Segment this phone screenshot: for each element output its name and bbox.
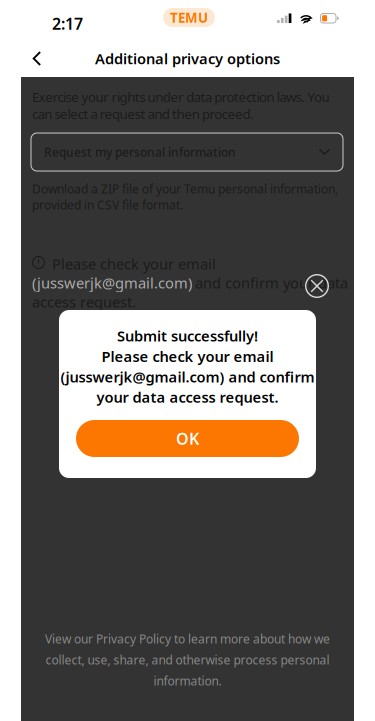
staticText: Additional privacy options [95, 49, 280, 68]
staticText: 2:17 [52, 13, 83, 34]
staticText: View our Privacy Policy to learn more ab… [45, 631, 330, 647]
staticText: Exercise your rights under data protecti… [32, 88, 330, 106]
staticText: OK [176, 428, 199, 449]
button[interactable]: Back [15, 40, 59, 77]
staticText: Download a ZIP file of your Temu persona… [32, 181, 338, 197]
staticText: and confirm your data [195, 273, 348, 292]
staticText: information. [153, 673, 221, 689]
staticText: Please check your email [101, 346, 273, 366]
button[interactable]: Close [297, 266, 337, 306]
staticText: provided in CSV file format. [32, 197, 183, 213]
staticText: Submit successfully! [117, 326, 258, 345]
staticText: TEMU [170, 9, 208, 26]
button[interactable]: OK [76, 420, 299, 457]
staticText: (jusswerjk@gmail.com) [32, 273, 192, 292]
staticText: Please check your email [52, 254, 216, 273]
staticText: (jusswerjk@gmail.com) and confirm [60, 367, 314, 386]
staticText: your data access request. [96, 387, 278, 407]
staticText: can select a request and then proceed. [32, 105, 254, 123]
staticText: collect, use, share, and otherwise proce… [45, 652, 329, 668]
staticText: Request my personal information [44, 144, 236, 160]
button[interactable]: Request my personal information [31, 133, 343, 171]
staticText: access request. [32, 292, 136, 311]
